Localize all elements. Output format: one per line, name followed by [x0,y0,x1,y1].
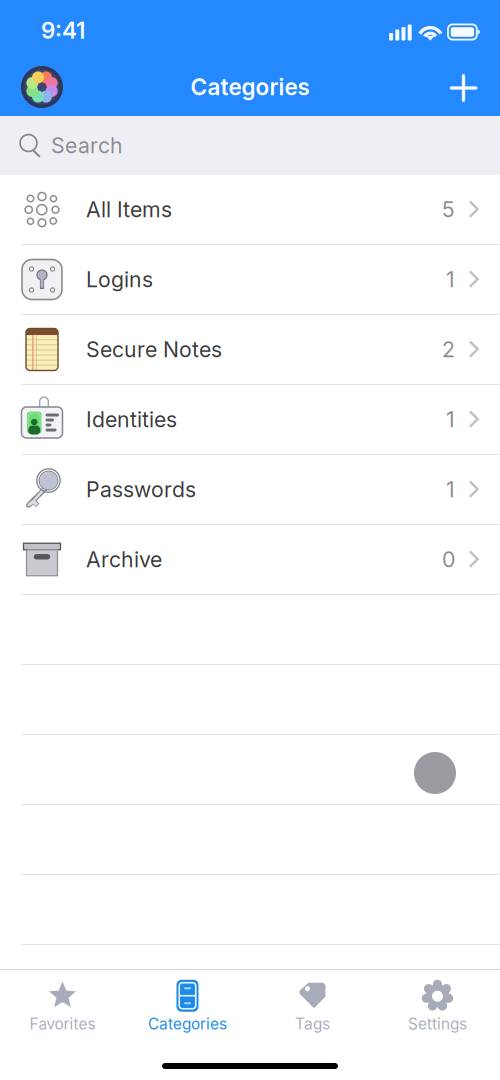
button[interactable]: Logins [0,245,500,314]
staticText: 1 [446,477,455,502]
staticText: 1 [446,407,455,432]
staticText: Logins [86,267,153,292]
staticText: All Items [86,197,172,222]
staticText: Identities [86,407,177,432]
staticText: Tags [295,1015,330,1033]
staticText: Secure Notes [86,337,222,362]
button[interactable]: Identities [0,385,500,454]
button[interactable]: Archive [0,525,500,594]
button[interactable]: Account [0,58,73,116]
button[interactable]: Tags [250,979,375,1033]
staticText: 9:41 [41,17,85,44]
staticText: Search [51,133,123,158]
button[interactable]: Add item [427,58,500,116]
staticText: 5 [442,197,455,222]
staticText: Categories [148,1015,227,1033]
staticText: 2 [442,337,455,362]
staticText: Archive [86,547,162,572]
staticText: Settings [408,1015,467,1033]
staticText: Passwords [86,477,196,502]
button[interactable]: Favorites [0,979,125,1033]
button[interactable]: Passwords [0,455,500,524]
staticText: 0 [442,547,455,572]
staticText: 1 [446,267,455,292]
button[interactable]: All Items [0,175,500,244]
staticText: Favorites [29,1015,95,1033]
staticText: Categories [190,73,309,101]
button[interactable]: Secure Notes [0,315,500,384]
button[interactable]: Categories [125,979,250,1033]
button[interactable]: Settings [375,979,500,1033]
